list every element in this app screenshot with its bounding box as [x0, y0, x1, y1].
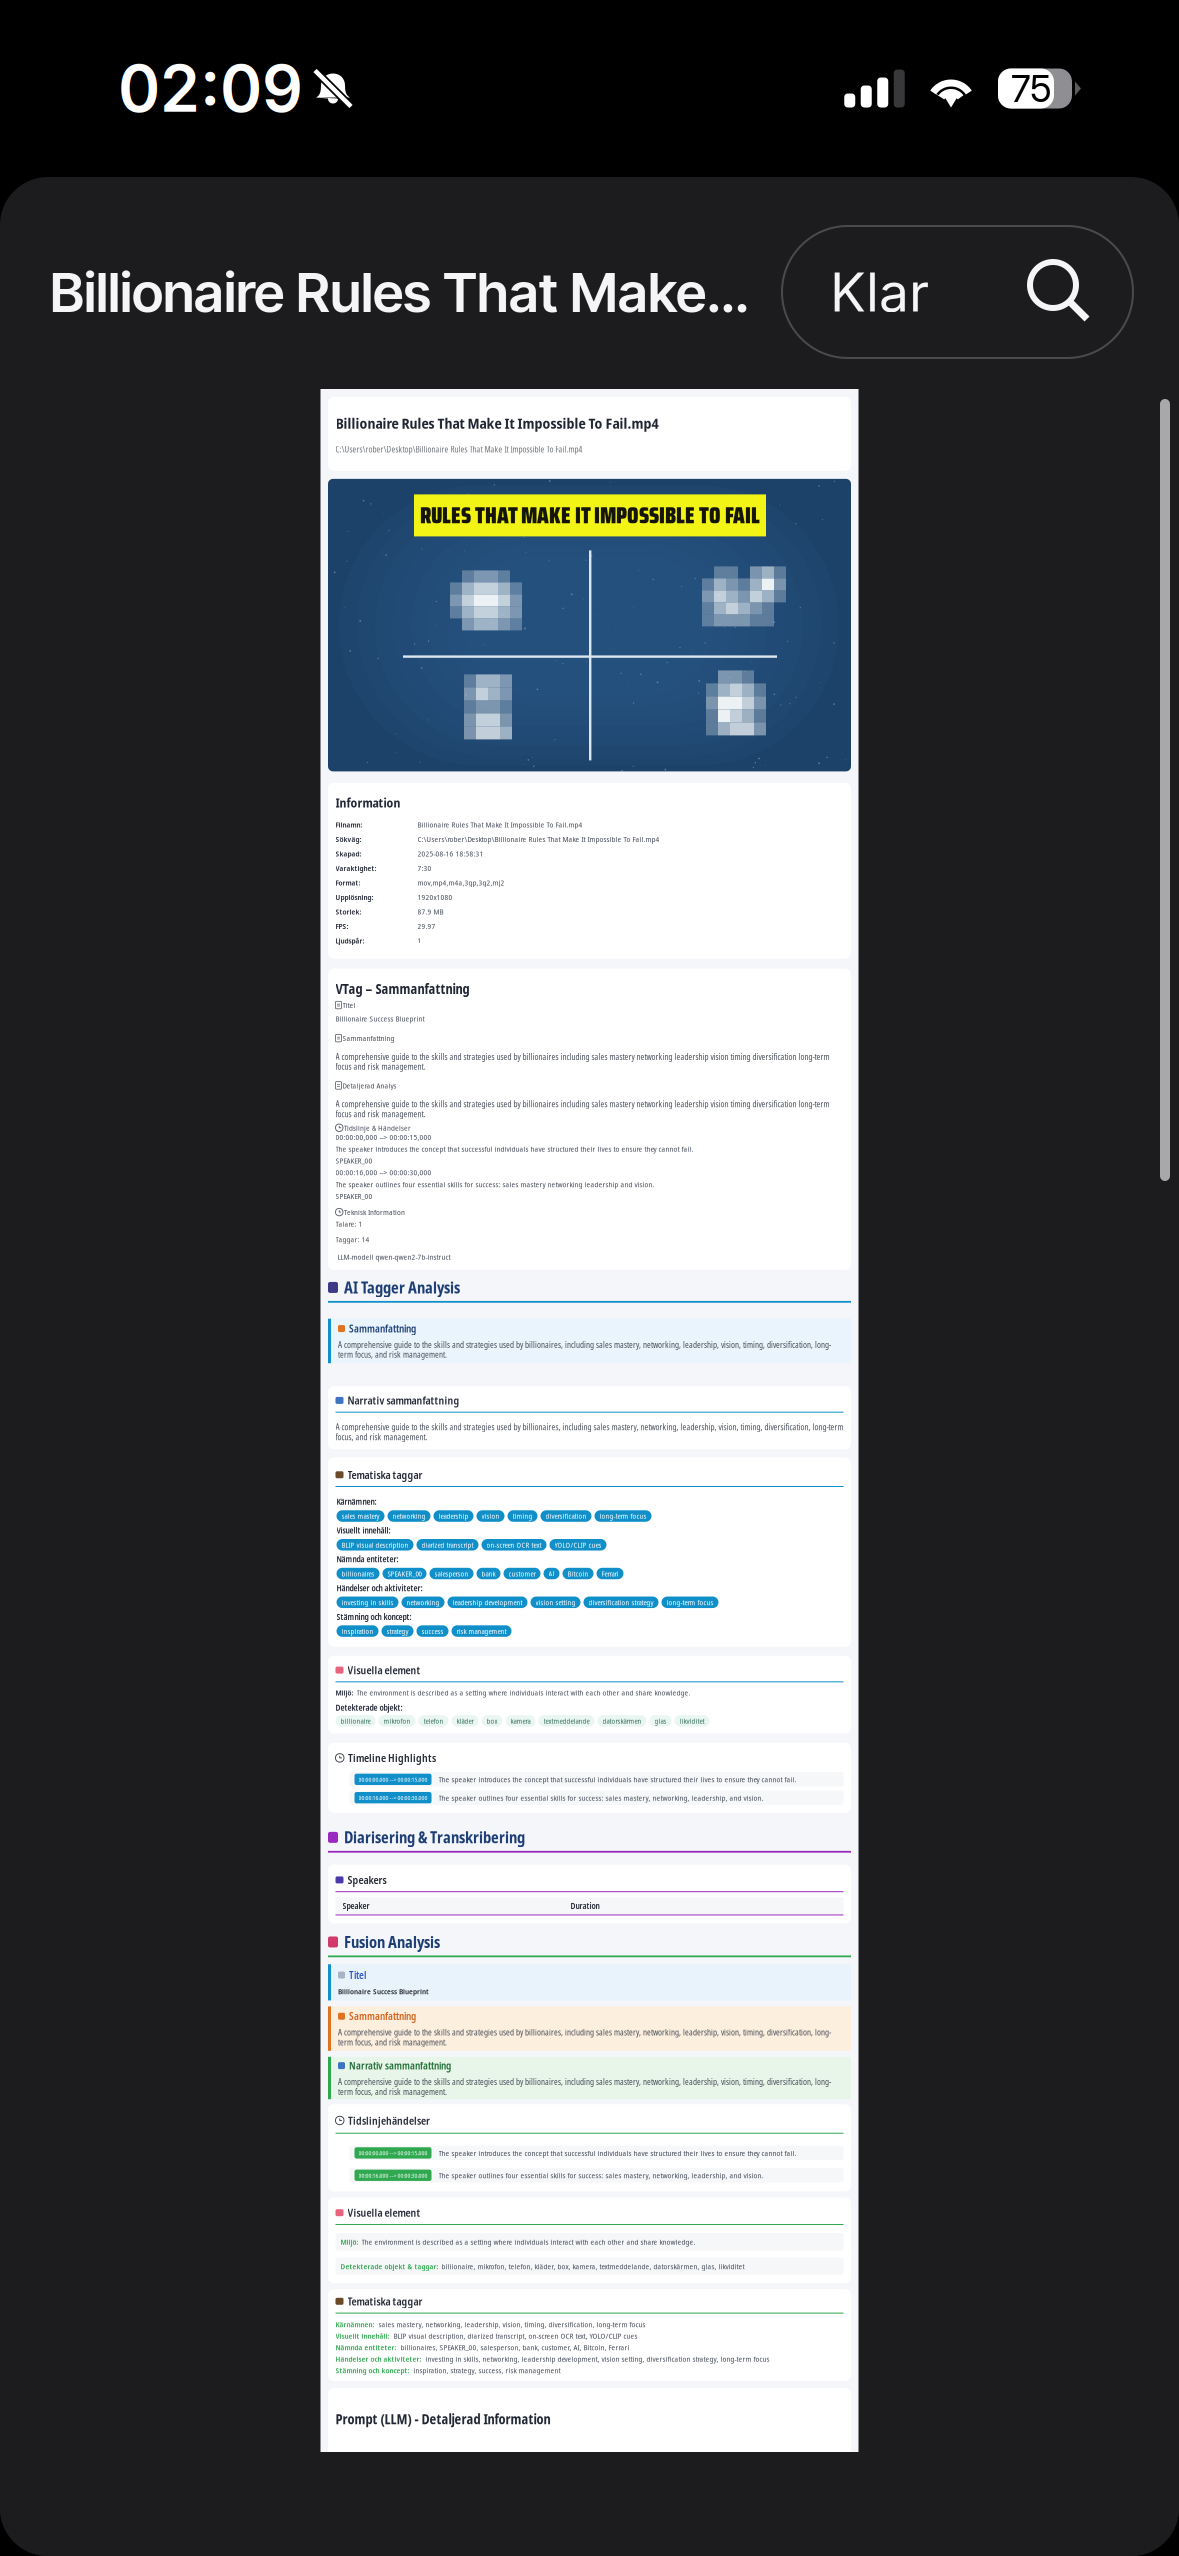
staticText: Stämning och koncept:: [335, 2365, 409, 2376]
staticText: A comprehensive guide to the skills and …: [338, 2076, 831, 2097]
staticText: Information: [335, 794, 400, 811]
staticText: AI: [548, 1568, 554, 1578]
staticText: success: [421, 1626, 443, 1636]
staticText: Sammanfattning: [349, 2009, 416, 2023]
staticText: Titel: [349, 1968, 366, 1982]
staticText: A comprehensive guide to the skills and …: [335, 1422, 843, 1442]
staticText: Ljudspår:: [335, 935, 364, 946]
staticText: billionaires: [341, 1568, 374, 1578]
staticText: Teknisk Information: [344, 1207, 405, 1217]
staticText: LLM-modell qwen-qwen2-7b-instruct: [335, 1251, 450, 1262]
staticText: telefon: [423, 1716, 443, 1726]
staticText: networking: [406, 1597, 439, 1607]
staticText: SPEAKER_00: [335, 1155, 372, 1166]
staticText: billionaire, mikrofon, telefon, kläder, …: [441, 2261, 744, 2271]
staticText: diversification: [545, 1511, 586, 1521]
staticText: Narrativ sammanfattning: [349, 2059, 451, 2072]
staticText: timing: [512, 1511, 532, 1521]
staticText: Sammanfattning: [349, 1322, 416, 1335]
staticText: Klar: [830, 260, 929, 324]
staticText: diarized transcript: [421, 1540, 473, 1550]
staticText: 00:00:00,000 --> 00:00:15,000: [358, 1775, 427, 1784]
staticText: A comprehensive guide to the skills and …: [335, 1099, 829, 1119]
staticText: Tidslinjehändelser: [348, 2113, 430, 2128]
staticText: Billionaire Success Blueprint: [335, 1013, 424, 1024]
staticText: leadership development: [452, 1597, 522, 1607]
staticText: A comprehensive guide to the skills and …: [338, 2027, 831, 2048]
staticText: Billionaire Rules That Make It Impossibl…: [335, 413, 658, 433]
staticText: 00:00:16,000 --> 00:00:30,000: [335, 1167, 431, 1178]
staticText: 1: [417, 935, 421, 946]
staticText: Billionaire Rules That Make It Impossibl…: [417, 819, 582, 830]
staticText: mov,mp4,m4a,3gp,3g2,mj2: [417, 877, 504, 888]
staticText: Narrativ sammanfattning: [347, 1393, 459, 1408]
staticText: The environment is described as a settin…: [361, 2236, 695, 2247]
staticText: sales mastery, networking, leadership, v…: [378, 2319, 645, 2330]
staticText: Detaljerad Analys: [342, 1080, 396, 1091]
staticText: Skapad:: [335, 848, 361, 859]
staticText: VTag – Sammanfattning: [335, 980, 469, 998]
staticText: The speaker outlines four essential skil…: [335, 1179, 654, 1189]
staticText: 00:00:16,000 --> 00:00:30,000: [358, 1793, 427, 1802]
staticText: vision: [481, 1511, 499, 1521]
staticText: Händelser och aktiviteter:: [335, 2354, 421, 2364]
staticText: The speaker outlines four essential skil…: [438, 2170, 763, 2180]
staticText: leadership: [438, 1511, 468, 1521]
staticText: Detekterade objekt:: [335, 1702, 402, 1713]
staticText: Nämnda entiteter:: [336, 1553, 398, 1565]
staticText: 00:00:16,000 --> 00:00:30,000: [358, 2171, 427, 2179]
staticText: Varaktighet:: [335, 863, 376, 873]
staticText: Visuella element: [347, 1663, 420, 1677]
staticText: long-term focus: [599, 1511, 646, 1521]
staticText: The speaker outlines four essential skil…: [438, 1792, 763, 1803]
staticText: The environment is described as a settin…: [356, 1687, 690, 1698]
staticText: Tidslinje & Händelser: [344, 1122, 411, 1133]
staticText: Talare: 1: [335, 1218, 362, 1229]
staticText: Upplösning:: [335, 892, 373, 902]
staticText: Prompt (LLM) - Detaljerad Information: [335, 2410, 550, 2428]
staticText: textmeddelande: [543, 1716, 589, 1726]
staticText: strategy: [386, 1626, 408, 1636]
staticText: investing in skills: [341, 1597, 393, 1607]
staticText: A comprehensive guide to the skills and …: [335, 1051, 829, 1072]
staticText: box: [486, 1716, 497, 1726]
staticText: vision setting: [535, 1597, 575, 1607]
staticText: SPEAKER_00: [335, 1191, 372, 1201]
staticText: datorskärmen: [602, 1716, 641, 1726]
staticText: salesperson: [434, 1568, 468, 1578]
staticText: risk management: [456, 1626, 506, 1636]
button[interactable]: Klar – search: [782, 226, 1133, 358]
staticText: The speaker introduces the concept that …: [438, 2148, 796, 2158]
staticText: FPS:: [335, 921, 348, 931]
staticText: Fusion Analysis: [344, 1931, 440, 1952]
staticText: Sammanfattning: [342, 1033, 394, 1043]
staticText: SPEAKER_00: [387, 1568, 421, 1578]
staticText: Visuellt innehåll:: [336, 1525, 390, 1536]
staticText: diversification strategy: [588, 1597, 653, 1607]
staticText: Ferrari: [601, 1568, 618, 1578]
staticText: Diarisering & Transkribering: [344, 1827, 525, 1848]
staticText: Billionaire Success Blueprint: [338, 1986, 429, 1996]
staticText: Speakers: [347, 1873, 386, 1887]
staticText: mikrofon: [383, 1716, 410, 1726]
staticText: bank: [481, 1568, 495, 1578]
staticText: 1920x1080: [417, 892, 452, 902]
staticText: long-term focus: [666, 1597, 713, 1607]
staticText: networking: [392, 1511, 425, 1521]
staticText: 2025-08-16 18:58:31: [417, 848, 483, 859]
staticText: Format:: [335, 877, 360, 888]
staticText: Miljö:: [335, 1687, 353, 1698]
staticText: Duration: [570, 1900, 599, 1911]
staticText: Storlek:: [335, 906, 361, 917]
staticText: A comprehensive guide to the skills and …: [338, 1339, 831, 1360]
staticText: Taggar: 14: [335, 1234, 369, 1244]
staticText: glas: [654, 1716, 666, 1726]
staticText: BLIP visual description: [341, 1540, 408, 1550]
staticText: Detekterade objekt & taggar:: [340, 2261, 438, 2271]
staticText: Visuellt innehåll:: [335, 2331, 389, 2341]
staticText: C:\Users\rober\Desktop\Billionaire Rules…: [335, 444, 582, 455]
staticText: 75: [1011, 66, 1052, 111]
staticText: billionaire: [340, 1716, 370, 1726]
staticText: Tematiska taggar: [347, 2294, 422, 2308]
staticText: Filnamn:: [335, 819, 362, 830]
